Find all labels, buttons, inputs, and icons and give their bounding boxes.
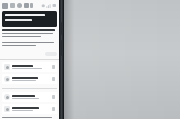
button[interactable] — [2, 104, 57, 114]
button[interactable] — [2, 62, 57, 72]
button[interactable] — [2, 92, 57, 102]
button[interactable] — [2, 74, 57, 84]
button[interactable]: More — [45, 52, 57, 56]
button[interactable] — [2, 11, 57, 27]
button[interactable]: Alarm — [17, 3, 22, 8]
button[interactable]: Notification — [10, 3, 15, 8]
button[interactable]: Status icon — [24, 3, 29, 8]
button[interactable]: App — [2, 3, 8, 9]
